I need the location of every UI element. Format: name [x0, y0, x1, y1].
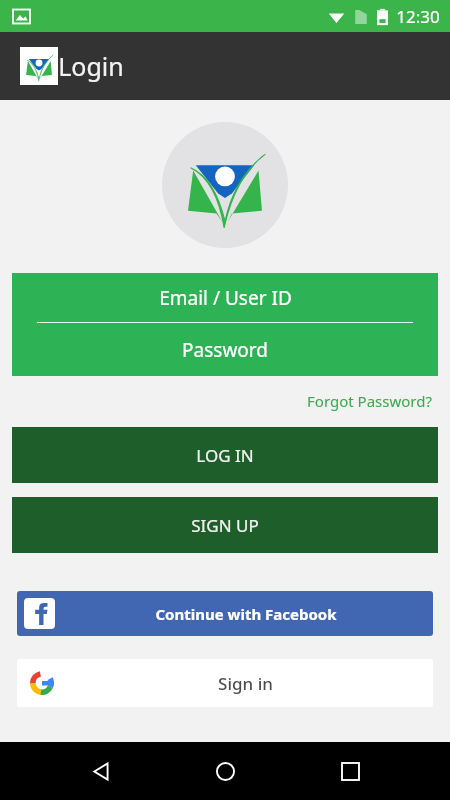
staticText: 12:30	[396, 5, 440, 28]
button[interactable]: SIGN UP	[12, 497, 438, 553]
staticText: LOG IN	[196, 444, 254, 467]
staticText: Email / User ID	[159, 285, 292, 311]
button[interactable]: Back	[77, 747, 125, 795]
staticText: Forgot Password?	[307, 391, 432, 411]
staticText: Login	[58, 49, 124, 83]
button[interactable]: Home	[201, 747, 249, 795]
button[interactable]: Email / User ID	[12, 273, 438, 322]
staticText: Sign in	[218, 672, 273, 695]
staticText: Password	[182, 337, 268, 363]
staticText: Continue with Facebook	[155, 604, 337, 624]
button[interactable]: Forgot Password?	[307, 389, 450, 413]
staticText: SIGN UP	[191, 514, 259, 537]
button[interactable]: Recent apps	[326, 747, 374, 795]
button[interactable]: LOG IN	[12, 427, 438, 483]
button[interactable]: Sign in	[17, 659, 433, 707]
button[interactable]: Password	[12, 323, 438, 376]
button[interactable]: Continue with Facebook	[17, 591, 433, 636]
